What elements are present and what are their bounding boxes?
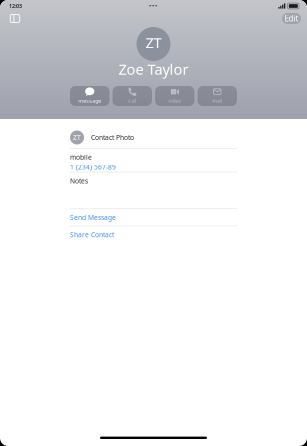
button[interactable]: Share Contact <box>70 226 237 243</box>
staticText: ZT <box>145 33 161 52</box>
staticText: ••• <box>149 2 158 10</box>
button[interactable]: video <box>155 86 194 106</box>
button[interactable]: Send Message <box>70 209 237 226</box>
staticText: mobile <box>70 153 92 162</box>
staticText: Notes <box>70 176 88 185</box>
staticText: mail <box>212 97 222 104</box>
button[interactable]: Edit <box>282 13 301 24</box>
button[interactable]: mail <box>197 86 237 106</box>
button[interactable]: ZT <box>70 127 237 148</box>
staticText: message <box>78 97 101 104</box>
button[interactable]: Show Sidebar <box>6 12 24 25</box>
staticText: Contact Photo <box>91 133 134 142</box>
staticText: Share Contact <box>70 230 114 239</box>
staticText: call <box>128 97 136 104</box>
staticText: 1 (234) 567-89 <box>70 163 116 171</box>
staticText: Edit <box>284 13 298 24</box>
staticText: Zoe Taylor <box>118 59 188 79</box>
staticText: ZT <box>73 133 81 142</box>
button[interactable]: message <box>70 86 109 106</box>
button[interactable]: call <box>112 86 152 106</box>
staticText: video <box>168 97 181 104</box>
button[interactable]: mobile <box>70 149 237 172</box>
staticText: Send Message <box>70 213 116 222</box>
staticText: 12:03 <box>9 2 22 10</box>
